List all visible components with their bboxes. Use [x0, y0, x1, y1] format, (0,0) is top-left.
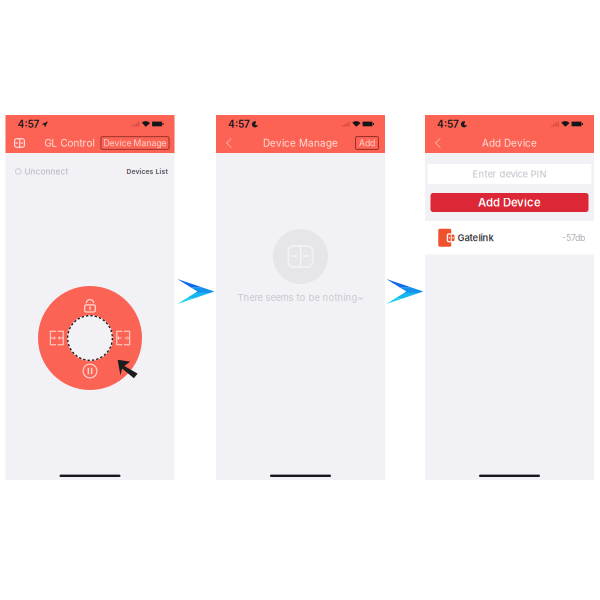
staticText: Add Device	[482, 137, 537, 149]
staticText: 4:57	[228, 118, 250, 130]
staticText: Device Manage	[263, 137, 338, 149]
button[interactable]: Enter device PIN	[425, 164, 594, 184]
staticText: Add	[359, 138, 375, 148]
staticText: 4:57	[17, 118, 39, 130]
staticText: Enter device PIN	[472, 168, 546, 180]
button[interactable]: Back	[222, 134, 236, 152]
button[interactable]: Device Manage	[100, 136, 169, 150]
staticText: Gatelink	[457, 232, 493, 243]
staticText: There seems to be nothing~	[237, 292, 363, 303]
staticText: GL Control	[44, 137, 94, 149]
staticText: -57db	[562, 232, 585, 243]
staticText: 4:57	[437, 118, 459, 130]
button[interactable]: Add Device	[425, 193, 594, 212]
button[interactable]: Panels	[10, 134, 28, 151]
staticText: Unconnect	[24, 167, 68, 176]
staticText: Device Manage	[103, 138, 166, 148]
button[interactable]: Add	[355, 136, 379, 150]
staticText: Devices List	[126, 167, 167, 176]
staticText: Add Device	[478, 196, 541, 209]
button[interactable]: Gatelink	[425, 221, 594, 254]
button[interactable]: Back	[431, 134, 445, 152]
